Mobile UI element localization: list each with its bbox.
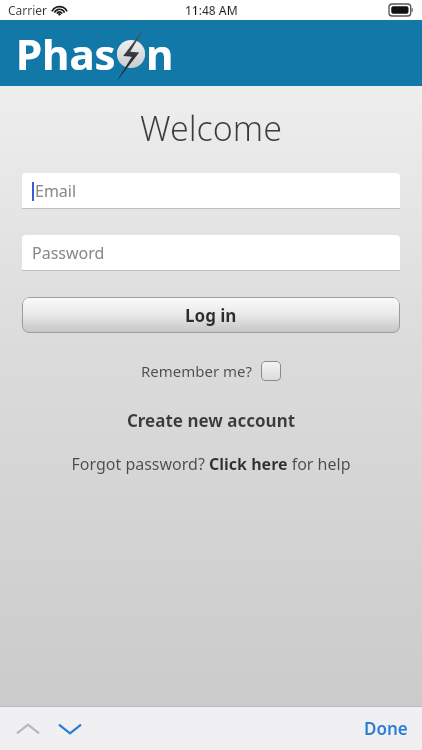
button[interactable]: Forgot password? Click here for help	[0, 450, 422, 478]
staticText: Done	[364, 717, 408, 740]
staticText: Carrier	[8, 2, 48, 18]
staticText: 11:48 AM	[185, 2, 238, 18]
staticText: Phas	[16, 25, 116, 82]
button[interactable]: Previous field	[10, 711, 46, 747]
button[interactable]: Create new account	[0, 405, 422, 436]
staticText: n	[146, 25, 174, 82]
button[interactable]: Log in	[22, 297, 400, 333]
button[interactable]: Remember me?	[137, 357, 285, 385]
staticText: Welcome	[0, 105, 422, 151]
button[interactable]: Next field	[52, 711, 88, 747]
button[interactable]: Password	[22, 235, 400, 270]
staticText: Log in	[185, 304, 237, 327]
staticText: Password	[32, 242, 105, 264]
staticText: Email	[35, 180, 77, 202]
other: Remember me checkbox	[261, 361, 281, 381]
staticText: Remember me?	[141, 361, 253, 381]
button[interactable]: Done	[350, 709, 422, 748]
button[interactable]: Email	[22, 173, 400, 208]
